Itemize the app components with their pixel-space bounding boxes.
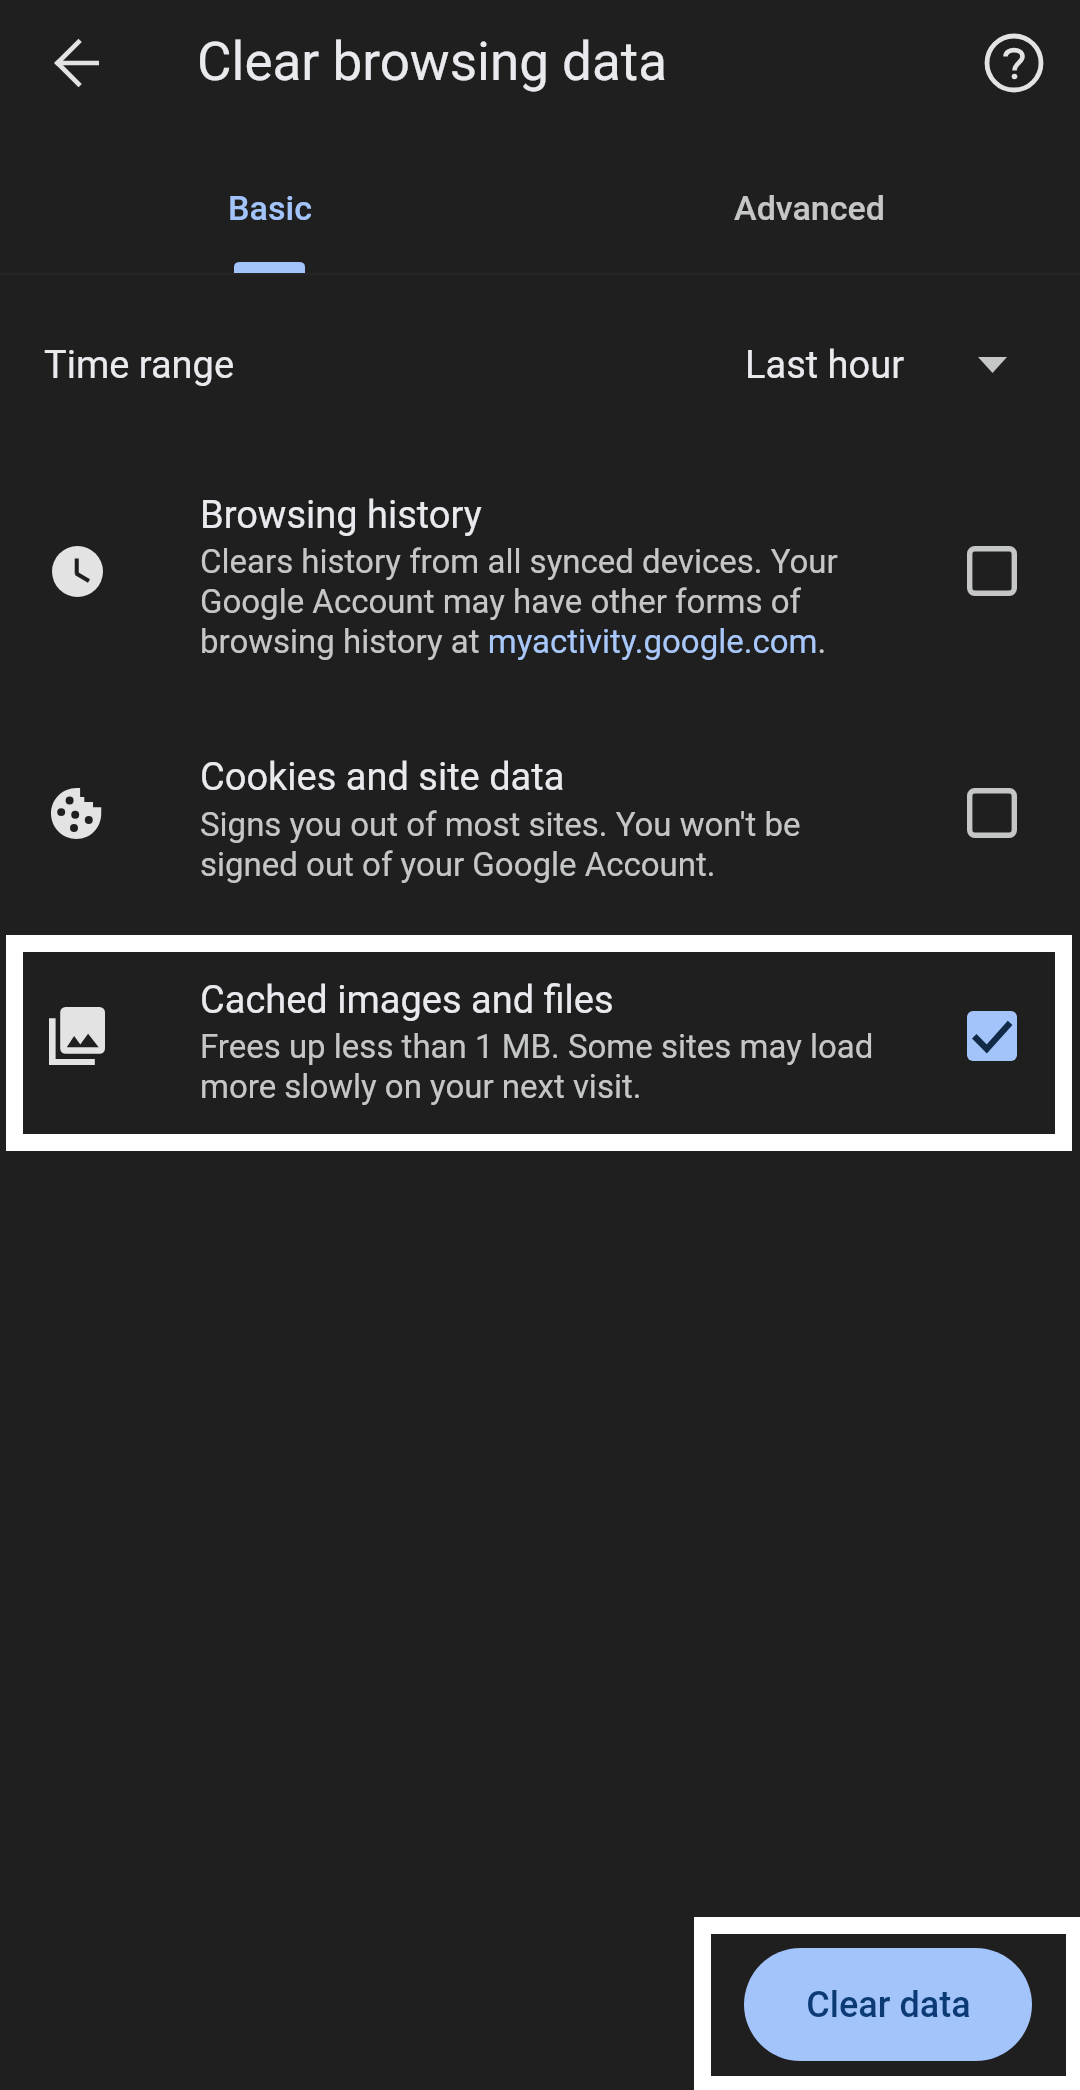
button[interactable]: Cookies and site data xyxy=(0,732,1080,922)
button[interactable]: Basic xyxy=(0,135,540,275)
staticText: Time range xyxy=(44,343,235,388)
staticText: Frees up less than 1 MB. Some sites may … xyxy=(200,1027,900,1106)
staticText: Clears history from all synced devices. … xyxy=(200,542,848,661)
staticText: Cached images and files xyxy=(200,978,614,1023)
staticText: Advanced xyxy=(734,188,886,228)
staticText: Clear data xyxy=(806,1984,971,2026)
staticText: Cookies and site data xyxy=(200,755,565,800)
staticText: Signs you out of most sites. You won't b… xyxy=(200,805,848,884)
button[interactable]: Help and feedback xyxy=(980,29,1048,97)
button[interactable]: Advanced xyxy=(540,135,1080,275)
button[interactable]: Time range xyxy=(0,288,1080,444)
button[interactable]: Cached images and files xyxy=(6,935,1072,1151)
staticText: Basic xyxy=(228,188,312,228)
staticText: Browsing history xyxy=(200,493,482,538)
staticText: Clear browsing data xyxy=(197,31,667,93)
button[interactable]: Clear data xyxy=(744,1948,1032,2061)
button[interactable]: Browsing history xyxy=(0,470,1080,700)
button[interactable]: Navigate up xyxy=(43,29,111,97)
staticText: Last hour xyxy=(745,343,905,388)
